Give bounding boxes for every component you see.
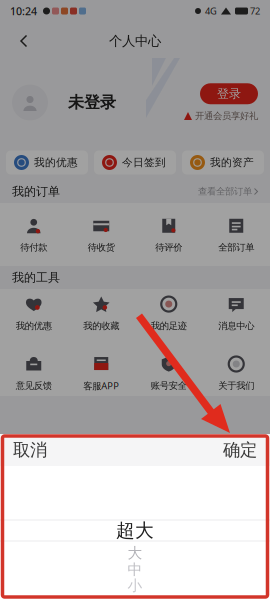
staticText: 我的工具: [12, 270, 60, 285]
staticText: 4G: [205, 5, 217, 17]
staticText: 确定: [223, 439, 257, 461]
staticText: 小: [127, 576, 142, 594]
button[interactable]: 我的收藏: [67, 294, 135, 332]
staticText: 登录: [217, 86, 241, 101]
button[interactable]: 中: [0, 561, 270, 577]
button[interactable]: 我的足迹: [135, 294, 202, 332]
staticText: 今日签到: [122, 156, 166, 169]
staticText: 10:24: [10, 4, 37, 18]
staticText: 超大: [116, 519, 154, 542]
button[interactable]: 未登录: [68, 93, 116, 112]
staticText: 中: [127, 560, 142, 578]
staticText: 客服APP: [83, 379, 119, 392]
button[interactable]: 我的优惠: [6, 150, 88, 174]
button[interactable]: 待收货: [67, 216, 135, 253]
button[interactable]: 超大: [0, 520, 270, 540]
button[interactable]: 待付款: [0, 216, 67, 253]
button[interactable]: 查看全部订单: [198, 186, 258, 197]
button[interactable]: 开通会员享好礼: [184, 110, 258, 122]
button[interactable]: 账号安全: [135, 354, 202, 391]
staticText: 意见反馈: [16, 380, 52, 391]
staticText: 待付款: [20, 242, 47, 253]
staticText: 我的足迹: [151, 320, 187, 332]
button[interactable]: 我的优惠: [0, 294, 67, 332]
button[interactable]: 意见反馈: [0, 354, 67, 391]
staticText: 取消: [13, 439, 47, 461]
staticText: 72: [250, 5, 260, 17]
button[interactable]: 客服APP: [67, 353, 135, 392]
staticText: 待收货: [88, 242, 115, 253]
staticText: 关于我们: [218, 380, 254, 391]
button[interactable]: 取消: [0, 434, 60, 466]
button[interactable]: 关于我们: [202, 354, 270, 391]
button[interactable]: 消息中心: [202, 294, 270, 332]
staticText: 待评价: [155, 242, 182, 253]
staticText: 账号安全: [151, 380, 187, 391]
button[interactable]: 小: [0, 577, 270, 593]
staticText: 我的收藏: [83, 320, 119, 332]
button[interactable]: 我的资产: [182, 150, 264, 174]
staticText: 全部订单: [218, 242, 254, 253]
staticText: 我的订单: [12, 184, 60, 199]
staticText: 大: [127, 544, 142, 562]
button[interactable]: 全部订单: [202, 216, 270, 253]
staticText: 我的优惠: [34, 156, 78, 169]
button[interactable]: 确定: [210, 434, 270, 466]
staticText: 我的优惠: [16, 320, 52, 332]
button[interactable]: 大: [0, 544, 270, 561]
button[interactable]: 登录: [200, 83, 258, 104]
button[interactable]: 返回: [10, 26, 38, 56]
staticText: 开通会员享好礼: [195, 110, 258, 122]
staticText: 查看全部订单: [198, 186, 252, 197]
staticText: 个人中心: [109, 33, 161, 49]
button[interactable]: 今日签到: [94, 150, 176, 174]
staticText: 未登录: [68, 93, 116, 112]
staticText: 消息中心: [218, 320, 254, 332]
button[interactable]: 待评价: [135, 216, 202, 253]
staticText: 我的资产: [210, 156, 254, 169]
button[interactable]: 头像: [12, 84, 48, 120]
